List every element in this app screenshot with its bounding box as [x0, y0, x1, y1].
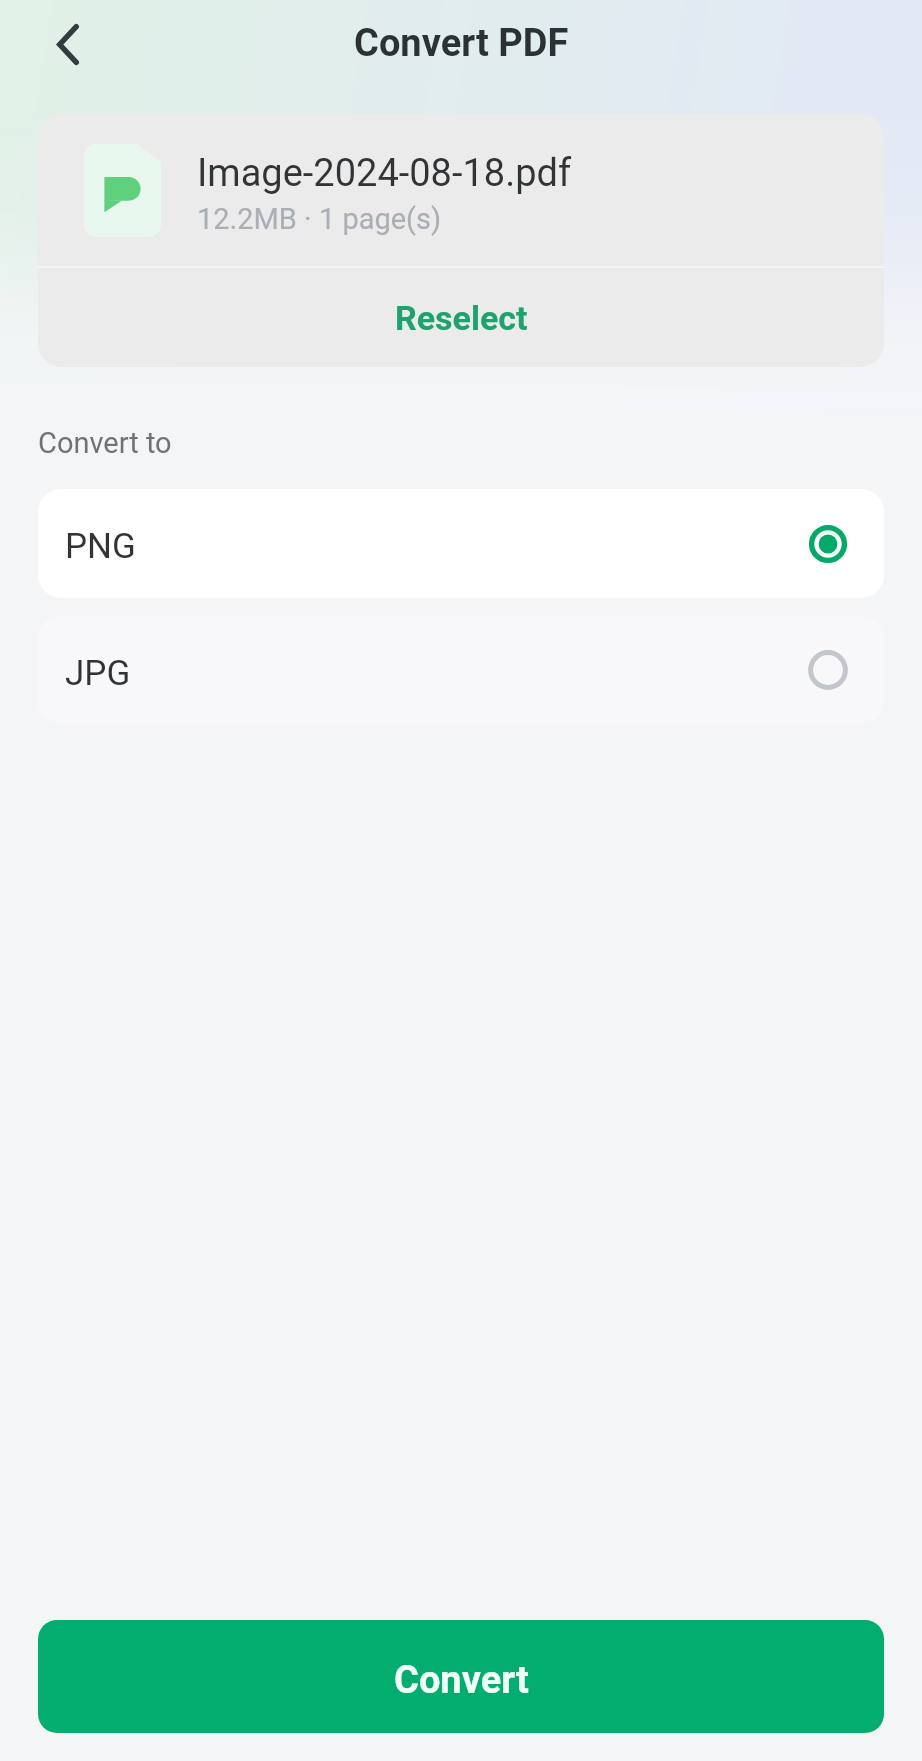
button[interactable]: JPG — [38, 616, 884, 724]
staticText: Reselect — [395, 298, 528, 338]
staticText: 12.2MB · 1 page(s) — [197, 202, 442, 236]
button[interactable]: PNG — [38, 489, 884, 598]
staticText: Convert — [394, 1658, 529, 1703]
button[interactable]: Back — [34, 10, 102, 78]
button[interactable]: Reselect — [38, 268, 884, 367]
staticText: Image-2024-08-18.pdf — [197, 151, 572, 196]
staticText: PNG — [65, 526, 136, 567]
staticText: Convert to — [38, 426, 172, 460]
staticText: JPG — [65, 653, 131, 694]
staticText: Convert PDF — [354, 21, 569, 66]
button[interactable]: Convert — [38, 1620, 884, 1733]
